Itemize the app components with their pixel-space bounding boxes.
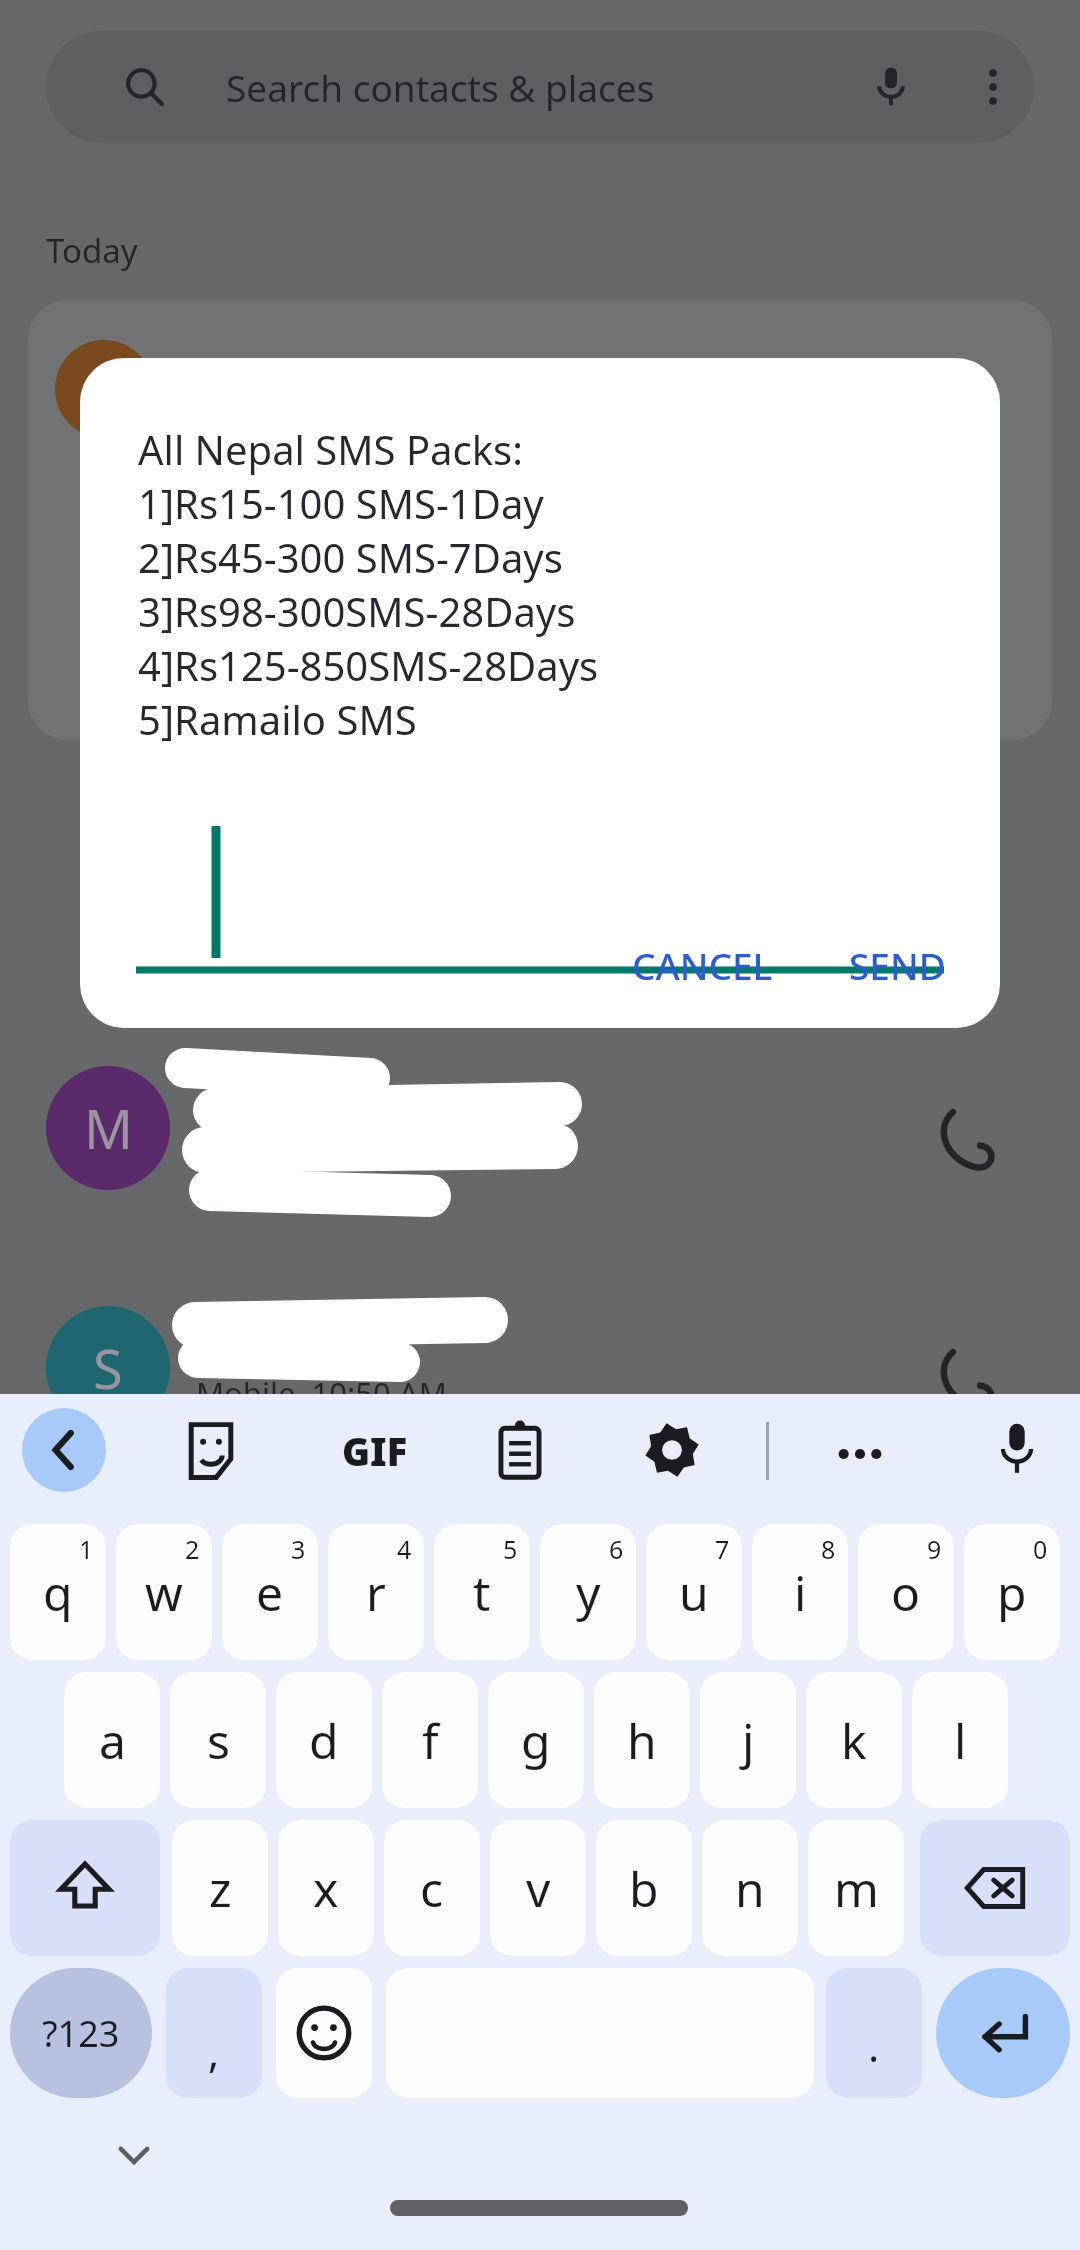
staticText: 6: [609, 1532, 624, 1566]
staticText: w: [145, 1560, 183, 1625]
staticText: 1]Rs15-100 SMS-1Day: [138, 476, 544, 530]
button[interactable]: ,: [166, 1968, 262, 2098]
staticText: m: [834, 1856, 879, 1921]
button[interactable]: q: [10, 1524, 106, 1660]
staticText: ,: [208, 2023, 220, 2080]
staticText: v: [526, 1856, 551, 1921]
button[interactable]: M: [0, 1040, 1080, 1270]
staticText: Mobile 10:50 AM: [196, 1372, 447, 1414]
button[interactable]: Voice search: [856, 52, 926, 122]
button[interactable]: z: [172, 1820, 268, 1956]
staticText: CANCEL: [632, 940, 773, 990]
button[interactable]: f: [382, 1672, 478, 1808]
staticText: 0: [1033, 1532, 1048, 1566]
staticText: Today: [46, 228, 138, 273]
button[interactable]: e: [222, 1524, 318, 1660]
button[interactable]: .: [826, 1968, 922, 2098]
button[interactable]: More options: [958, 52, 1028, 122]
button[interactable]: Stickers: [178, 1418, 244, 1484]
staticText: g: [521, 1708, 551, 1773]
staticText: 2: [185, 1532, 200, 1566]
button[interactable]: c: [384, 1820, 480, 1956]
button[interactable]: Backspace: [920, 1820, 1070, 1956]
staticText: SEND: [849, 940, 946, 990]
button[interactable]: v: [490, 1820, 586, 1956]
button[interactable]: r: [328, 1524, 424, 1660]
staticText: c: [420, 1856, 444, 1921]
button[interactable]: Settings: [638, 1416, 706, 1484]
staticText: n: [735, 1856, 765, 1921]
staticText: All Nepal SMS Packs:: [138, 422, 523, 476]
button[interactable]: j: [700, 1672, 796, 1808]
button[interactable]: d: [276, 1672, 372, 1808]
staticText: y: [576, 1560, 601, 1625]
staticText: 4: [397, 1532, 412, 1566]
staticText: a: [99, 1708, 126, 1773]
staticText: t: [473, 1560, 491, 1625]
staticText: f: [422, 1708, 439, 1773]
staticText: 4]Rs125-850SMS-28Days: [138, 638, 599, 692]
button[interactable]: Search contacts & places: [46, 31, 1034, 143]
staticText: .: [868, 2017, 880, 2074]
button[interactable]: Enter: [936, 1968, 1070, 2098]
staticText: b: [629, 1856, 659, 1921]
button[interactable]: p: [964, 1524, 1060, 1660]
staticText: d: [309, 1708, 339, 1773]
staticText: r: [366, 1560, 386, 1625]
staticText: x: [313, 1856, 339, 1921]
button[interactable]: w: [116, 1524, 212, 1660]
staticText: ?123: [42, 2009, 120, 2058]
button[interactable]: o: [858, 1524, 954, 1660]
staticText: o: [891, 1560, 921, 1625]
staticText: z: [209, 1856, 232, 1921]
button[interactable]: Back: [22, 1408, 106, 1492]
button[interactable]: GIF: [330, 1420, 420, 1482]
button[interactable]: Voice input: [982, 1414, 1052, 1484]
staticText: j: [742, 1708, 755, 1773]
button[interactable]: ?123: [10, 1968, 152, 2098]
staticText: 9: [927, 1532, 942, 1566]
button[interactable]: y: [540, 1524, 636, 1660]
button[interactable]: SEND: [823, 918, 972, 1012]
button[interactable]: k: [806, 1672, 902, 1808]
staticText: u: [679, 1560, 709, 1625]
button[interactable]: s: [170, 1672, 266, 1808]
staticText: p: [997, 1560, 1027, 1625]
button[interactable]: Hide keyboard: [104, 2126, 164, 2186]
staticText: 8: [821, 1532, 836, 1566]
staticText: 7: [715, 1532, 730, 1566]
staticText: i: [794, 1560, 807, 1625]
button[interactable]: Call: [930, 1340, 1006, 1416]
button[interactable]: CANCEL: [606, 918, 799, 1012]
staticText: 5: [503, 1532, 518, 1566]
staticText: k: [841, 1708, 867, 1773]
button[interactable]: b: [596, 1820, 692, 1956]
button[interactable]: g: [488, 1672, 584, 1808]
button[interactable]: h: [594, 1672, 690, 1808]
staticText: S: [93, 1331, 123, 1405]
button[interactable]: a: [64, 1672, 160, 1808]
button[interactable]: Emoji: [276, 1968, 372, 2098]
button[interactable]: t: [434, 1524, 530, 1660]
staticText: GIF: [342, 1425, 408, 1477]
staticText: M: [84, 1091, 133, 1165]
staticText: l: [954, 1708, 967, 1773]
button[interactable]: S: [0, 1280, 1080, 1510]
staticText: 3: [291, 1532, 306, 1566]
staticText: 3]Rs98-300SMS-28Days: [138, 584, 576, 638]
staticText: h: [627, 1708, 657, 1773]
button[interactable]: i: [752, 1524, 848, 1660]
button[interactable]: u: [646, 1524, 742, 1660]
button[interactable]: Shift: [10, 1820, 160, 1956]
staticText: Mobile 2:11 PM: [196, 1132, 428, 1174]
button[interactable]: l: [912, 1672, 1008, 1808]
button[interactable]: More: [826, 1420, 894, 1488]
staticText: 5]Ramailo SMS: [138, 692, 417, 746]
button[interactable]: n: [702, 1820, 798, 1956]
button[interactable]: m: [808, 1820, 904, 1956]
button[interactable]: Call: [930, 1100, 1006, 1176]
staticText: s: [207, 1708, 230, 1773]
button[interactable]: Clipboard: [486, 1416, 554, 1484]
button[interactable]: x: [278, 1820, 374, 1956]
